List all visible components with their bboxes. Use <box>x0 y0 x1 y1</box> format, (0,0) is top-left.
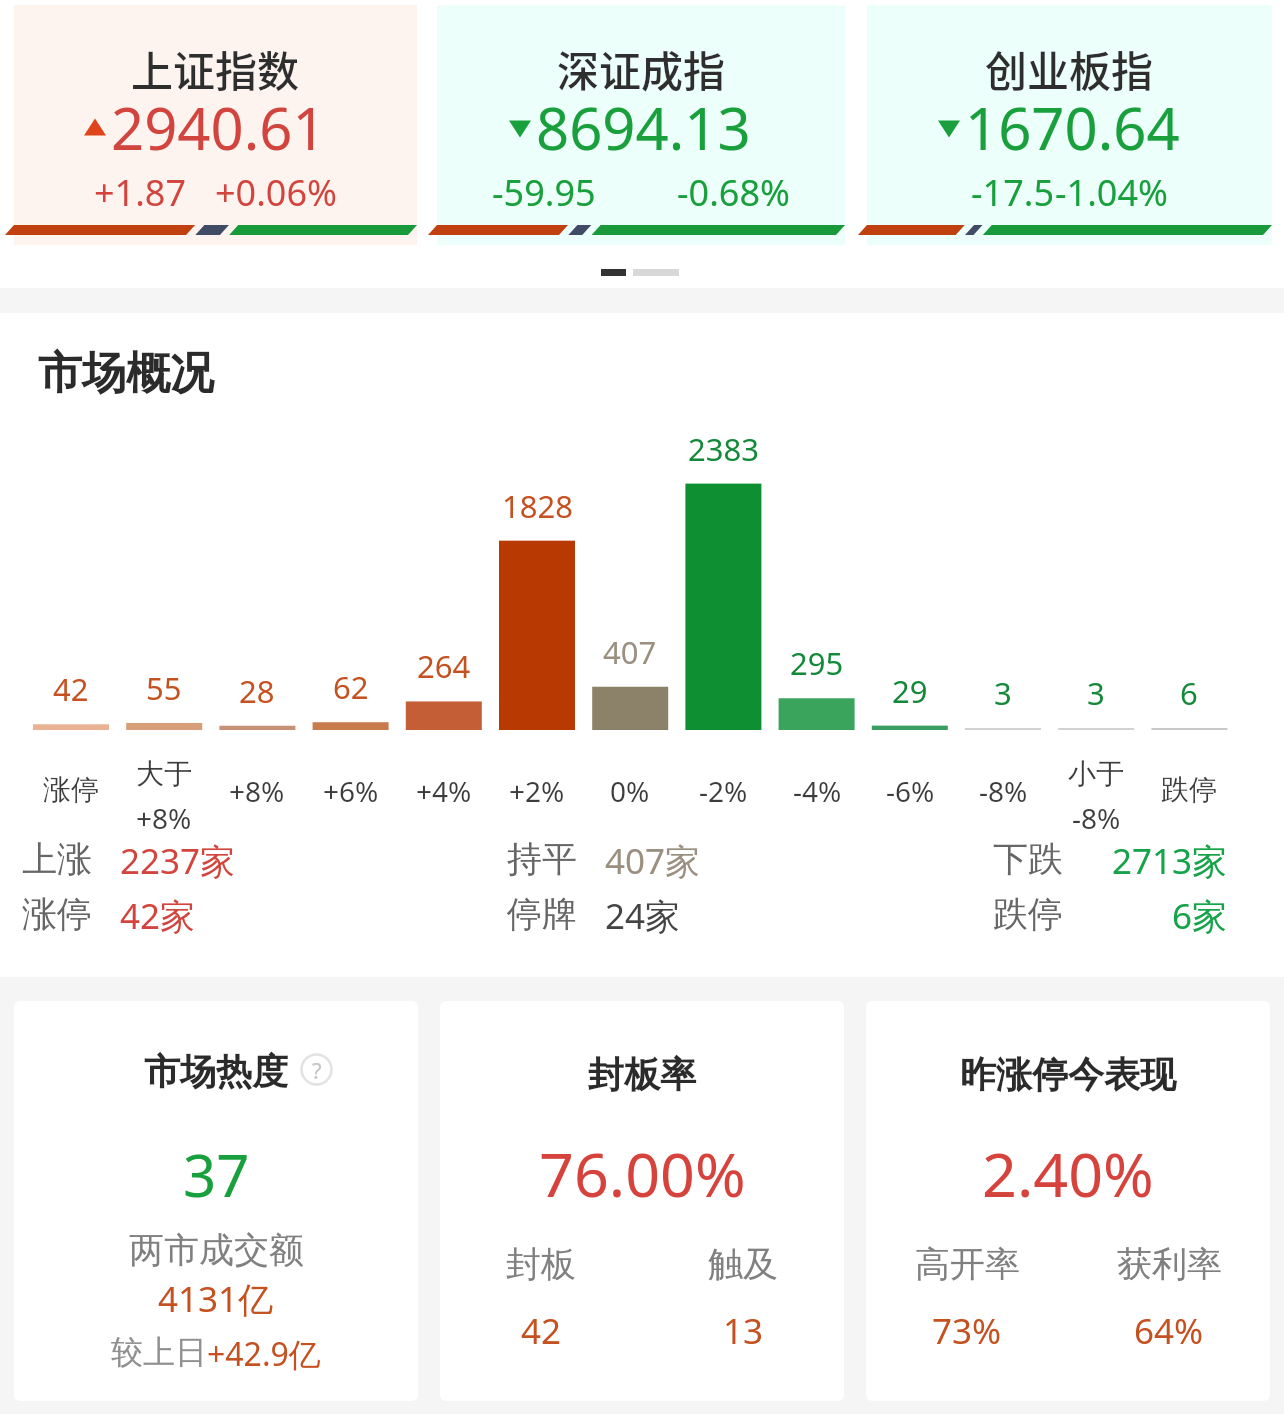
staticText: 8694.13 <box>536 88 751 167</box>
staticText: +4% <box>416 772 472 810</box>
staticText: 55 <box>146 667 182 709</box>
staticText: 封板率 <box>588 1052 696 1097</box>
button[interactable]: 昨涨停今表现 <box>866 1001 1270 1401</box>
staticText: 昨涨停今表现 <box>960 1052 1176 1097</box>
staticText: 407 <box>603 631 657 673</box>
staticText: 获利率 <box>1117 1242 1222 1286</box>
staticText: 28 <box>239 670 275 712</box>
staticText: 1670.64 <box>965 88 1180 167</box>
staticText: -8% <box>979 772 1028 810</box>
staticText: 封板 <box>506 1242 576 1286</box>
staticText: 上证指数 <box>131 38 300 99</box>
staticText: 上涨 <box>22 837 92 881</box>
staticText: +0.06% <box>215 168 337 217</box>
staticText: 3 <box>1087 672 1105 714</box>
staticText: 13 <box>723 1307 764 1355</box>
staticText: 6 <box>1180 672 1198 714</box>
staticText: +6% <box>323 772 379 810</box>
staticText: 62 <box>333 666 369 708</box>
button[interactable]: 封板率 <box>440 1001 844 1401</box>
staticText: +2% <box>509 772 565 810</box>
staticText: 涨停 <box>22 892 92 936</box>
staticText: 2237家 <box>120 837 236 885</box>
button[interactable]: 创业板指 <box>867 5 1272 245</box>
staticText: 73% <box>932 1307 1002 1355</box>
staticText: 市场概况 <box>38 346 214 401</box>
staticText: -8% <box>1072 799 1121 837</box>
staticText: 76.00% <box>539 1132 746 1215</box>
staticText: 小于 <box>1068 756 1124 791</box>
staticText: 高开率 <box>915 1242 1020 1286</box>
staticText: -2% <box>699 772 748 810</box>
staticText: -59.95 <box>492 168 596 217</box>
staticText: 37 <box>183 1135 250 1214</box>
staticText: 295 <box>790 642 844 684</box>
staticText: +8% <box>136 799 192 837</box>
staticText: 42 <box>53 668 89 710</box>
staticText: 两市成交额 <box>129 1228 304 1272</box>
staticText: 2940.61 <box>111 88 326 167</box>
staticText: +8% <box>229 772 285 810</box>
button[interactable]: 市场热度 <box>14 1001 418 1401</box>
staticText: 涨停 <box>43 772 99 807</box>
staticText: -17.5 <box>971 168 1055 217</box>
staticText: -0.68% <box>677 168 790 217</box>
staticText: 跌停 <box>1161 772 1217 807</box>
staticText: 42家 <box>120 892 196 940</box>
staticText: 跌停 <box>993 892 1063 936</box>
staticText: 42 <box>521 1307 562 1355</box>
staticText: 0% <box>610 772 650 810</box>
staticText: 2383 <box>688 428 759 470</box>
staticText: 4131亿 <box>158 1275 274 1323</box>
staticText: 市场热度 <box>144 1049 288 1094</box>
staticText: 407家 <box>605 837 701 885</box>
staticText: 29 <box>892 670 928 712</box>
staticText: 停牌 <box>507 892 577 936</box>
staticText: 触及 <box>708 1242 778 1286</box>
staticText: +42.9亿 <box>207 1332 321 1376</box>
staticText: -1.04% <box>1055 168 1168 217</box>
staticText: 264 <box>417 645 471 687</box>
button[interactable]: 上证指数 <box>14 5 417 245</box>
staticText: 64% <box>1134 1307 1204 1355</box>
staticText: 创业板指 <box>985 38 1154 99</box>
staticText: -4% <box>793 772 842 810</box>
staticText: -6% <box>886 772 935 810</box>
staticText: 3 <box>994 672 1012 714</box>
staticText: 持平 <box>507 837 577 881</box>
staticText: 2.40% <box>982 1132 1154 1215</box>
staticText: ? <box>312 1055 322 1085</box>
staticText: 2713家 <box>1112 837 1228 885</box>
button[interactable]: 深证成指 <box>437 5 845 245</box>
staticText: 24家 <box>605 892 681 940</box>
staticText: 1828 <box>502 485 573 527</box>
staticText: +1.87 <box>94 168 187 217</box>
staticText: 下跌 <box>993 837 1063 881</box>
staticText: 深证成指 <box>557 38 726 99</box>
staticText: 大于 <box>136 756 192 791</box>
staticText: 6家 <box>1172 892 1228 940</box>
staticText: 较上日 <box>111 1332 207 1372</box>
